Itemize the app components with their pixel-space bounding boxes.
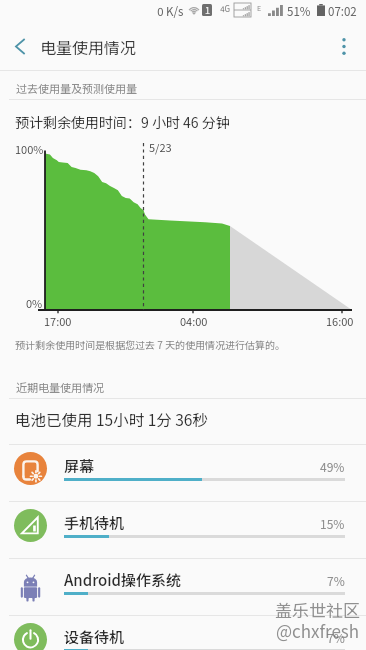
button[interactable]: Android操作系统 [0, 558, 366, 615]
staticText: @chxfresh [276, 618, 360, 643]
button[interactable]: 手机待机 [0, 501, 366, 558]
staticText: 预计剩余使用时间是根据您过去 7 天的使用情况进行估算的。 [15, 337, 286, 351]
staticText: 5/23 [149, 139, 172, 155]
staticText: 1 [205, 4, 210, 16]
staticText: 15% [320, 515, 345, 532]
staticText: 电池已使用 15小时 1分 36秒 [15, 408, 208, 430]
staticText: 7% [327, 629, 345, 646]
staticText: 04:00 [180, 313, 208, 329]
staticText: E [257, 3, 262, 13]
staticText: 07:02 [328, 3, 357, 20]
staticText: 51% [287, 3, 311, 20]
staticText: 7% [327, 572, 345, 589]
staticText: 100% [15, 141, 44, 157]
staticText: 盖乐世社区 [275, 597, 360, 622]
staticText: 4G [220, 3, 230, 15]
staticText: 16:00 [326, 313, 354, 329]
staticText: Android操作系统 [64, 569, 182, 591]
staticText: 近期电量使用情况 [16, 379, 104, 395]
button[interactable]: More options [322, 24, 366, 68]
staticText: 手机待机 [64, 512, 125, 534]
staticText: 0% [26, 295, 43, 311]
staticText: 屏幕 [64, 455, 95, 477]
staticText: 设备待机 [64, 626, 125, 648]
staticText: 0 K/s [157, 3, 184, 20]
button[interactable]: Back [0, 26, 40, 66]
staticText: 17:00 [44, 313, 72, 329]
staticText: 49% [320, 458, 345, 475]
button[interactable]: 屏幕 [0, 444, 366, 501]
staticText: 过去使用量及预测使用量 [16, 80, 137, 96]
staticText: 电量使用情况 [40, 35, 137, 58]
staticText: 预计剩余使用时间：9 小时 46 分钟 [15, 112, 230, 132]
button[interactable]: 设备待机 [0, 615, 366, 650]
